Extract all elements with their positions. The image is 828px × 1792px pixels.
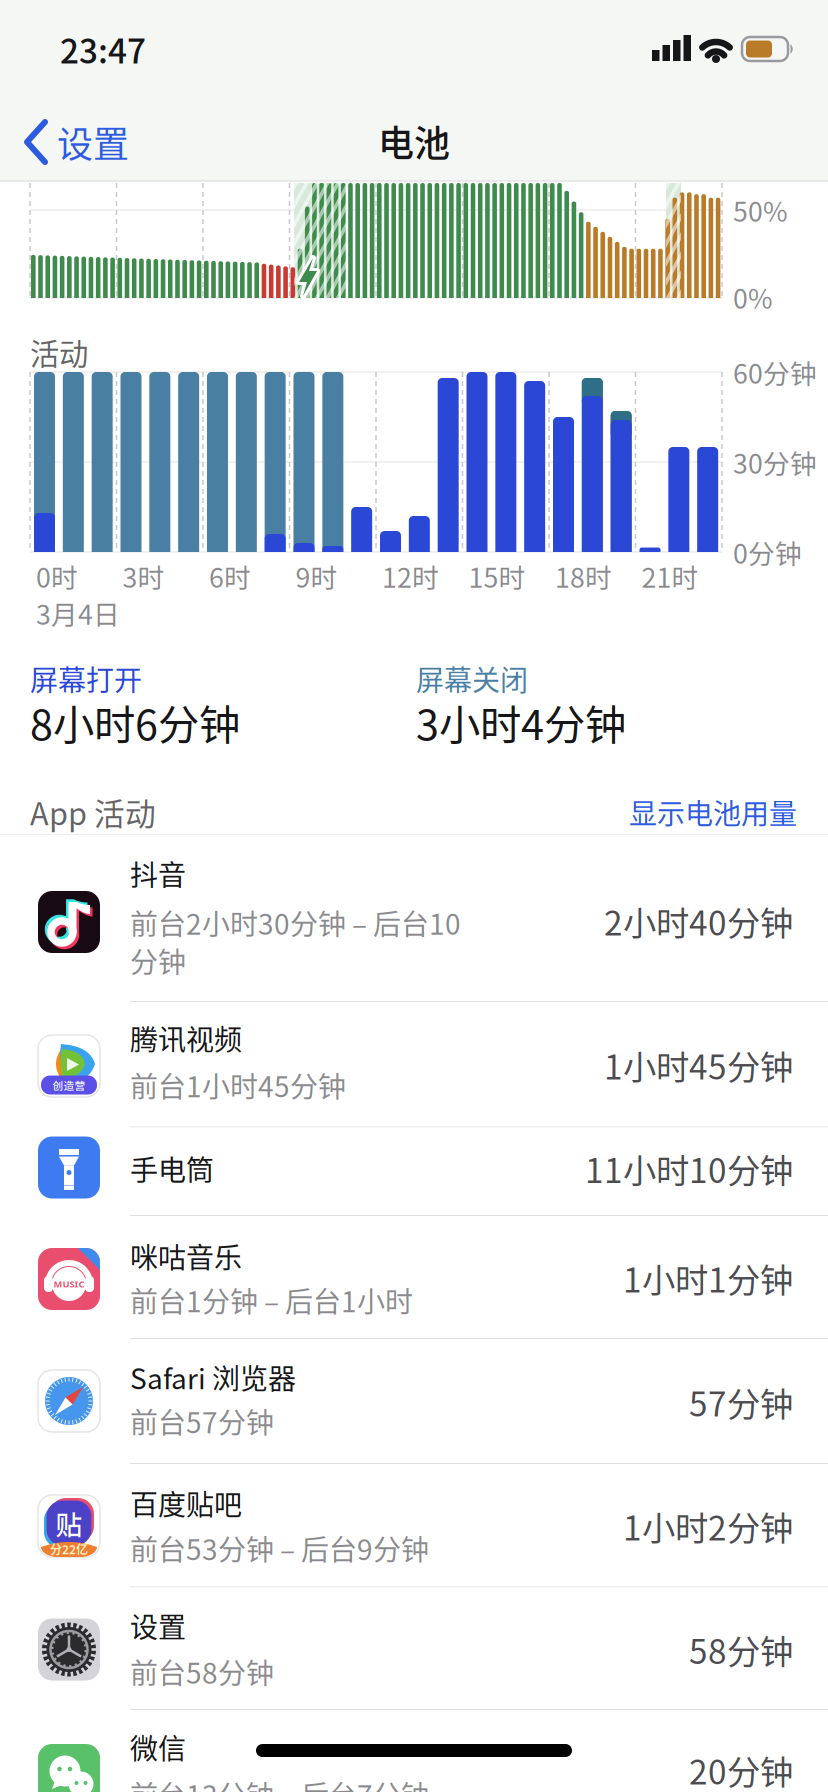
- staticText: 23:47: [60, 25, 146, 73]
- staticText: Safari 浏览器: [130, 1357, 296, 1397]
- staticText: 11小时10分钟: [585, 1144, 793, 1193]
- staticText: 58分钟: [689, 1625, 793, 1674]
- button[interactable]: MUSIC: [0, 1216, 828, 1339]
- staticText: 3小时4分钟: [416, 692, 626, 752]
- staticText: 3时: [122, 557, 164, 595]
- staticText: 0分钟: [733, 533, 802, 571]
- staticText: 前台1分钟 – 后台1小时: [130, 1280, 413, 1320]
- staticText: 微信: [130, 1727, 186, 1767]
- staticText: 创造营: [52, 1077, 85, 1093]
- staticText: 百度贴吧: [130, 1483, 242, 1523]
- staticText: 屏幕打开: [30, 658, 142, 699]
- staticText: 前台1小时45分钟: [130, 1065, 346, 1105]
- staticText: 1小时45分钟: [604, 1041, 793, 1089]
- staticText: 9时: [295, 557, 337, 595]
- staticText: 显示电池用量: [629, 792, 797, 832]
- staticText: 1小时1分钟: [623, 1254, 793, 1302]
- staticText: 15时: [468, 557, 525, 595]
- staticText: 分钟: [130, 940, 186, 981]
- staticText: 0%: [733, 278, 773, 316]
- staticText: 咪咕音乐: [130, 1236, 242, 1276]
- staticText: 设置: [130, 1605, 186, 1646]
- staticText: 贴: [55, 1504, 82, 1542]
- staticText: 前台58分钟: [130, 1651, 274, 1692]
- staticText: 50%: [733, 191, 788, 229]
- staticText: 57分钟: [689, 1378, 793, 1426]
- staticText: 30分钟: [733, 443, 817, 481]
- button[interactable]: 设置: [0, 1587, 828, 1710]
- staticText: 3月4日: [36, 594, 120, 632]
- button[interactable]: Safari 浏览器: [0, 1339, 828, 1464]
- staticText: 前台57分钟: [130, 1401, 274, 1441]
- staticText: 前台13分钟 – 后台7分钟: [130, 1774, 429, 1792]
- staticText: 6时: [209, 557, 251, 595]
- button[interactable]: 手电筒: [0, 1127, 828, 1216]
- staticText: 抖音: [130, 853, 186, 894]
- staticText: 屏幕关闭: [416, 658, 528, 699]
- staticText: 2小时40分钟: [604, 897, 793, 945]
- staticText: 活动: [30, 331, 88, 373]
- staticText: 20分钟: [689, 1746, 793, 1792]
- button[interactable]: 微信: [0, 1710, 828, 1792]
- staticText: 1小时2分钟: [623, 1502, 793, 1550]
- staticText: 腾讯视频: [130, 1018, 242, 1058]
- button[interactable]: 返回设置: [20, 112, 180, 172]
- button[interactable]: 贴: [0, 1464, 828, 1587]
- staticText: 分22亿: [50, 1540, 88, 1558]
- staticText: 电池: [378, 115, 450, 167]
- staticText: App 活动: [30, 790, 156, 834]
- staticText: 手电筒: [130, 1148, 214, 1189]
- button[interactable]: 抖音: [0, 835, 828, 1002]
- staticText: 设置: [57, 116, 129, 168]
- staticText: 前台53分钟 – 后台9分钟: [130, 1528, 429, 1568]
- staticText: 12时: [382, 557, 439, 595]
- staticText: MUSIC: [53, 1278, 84, 1290]
- staticText: 8小时6分钟: [30, 692, 240, 752]
- staticText: 60分钟: [733, 353, 817, 391]
- staticText: 18时: [555, 557, 612, 595]
- button[interactable]: 创造营: [0, 1002, 828, 1127]
- staticText: 0时: [36, 557, 78, 595]
- staticText: 21时: [641, 557, 698, 595]
- button[interactable]: 显示电池用量: [557, 788, 797, 836]
- staticText: 前台2小时30分钟 – 后台10: [130, 902, 461, 943]
